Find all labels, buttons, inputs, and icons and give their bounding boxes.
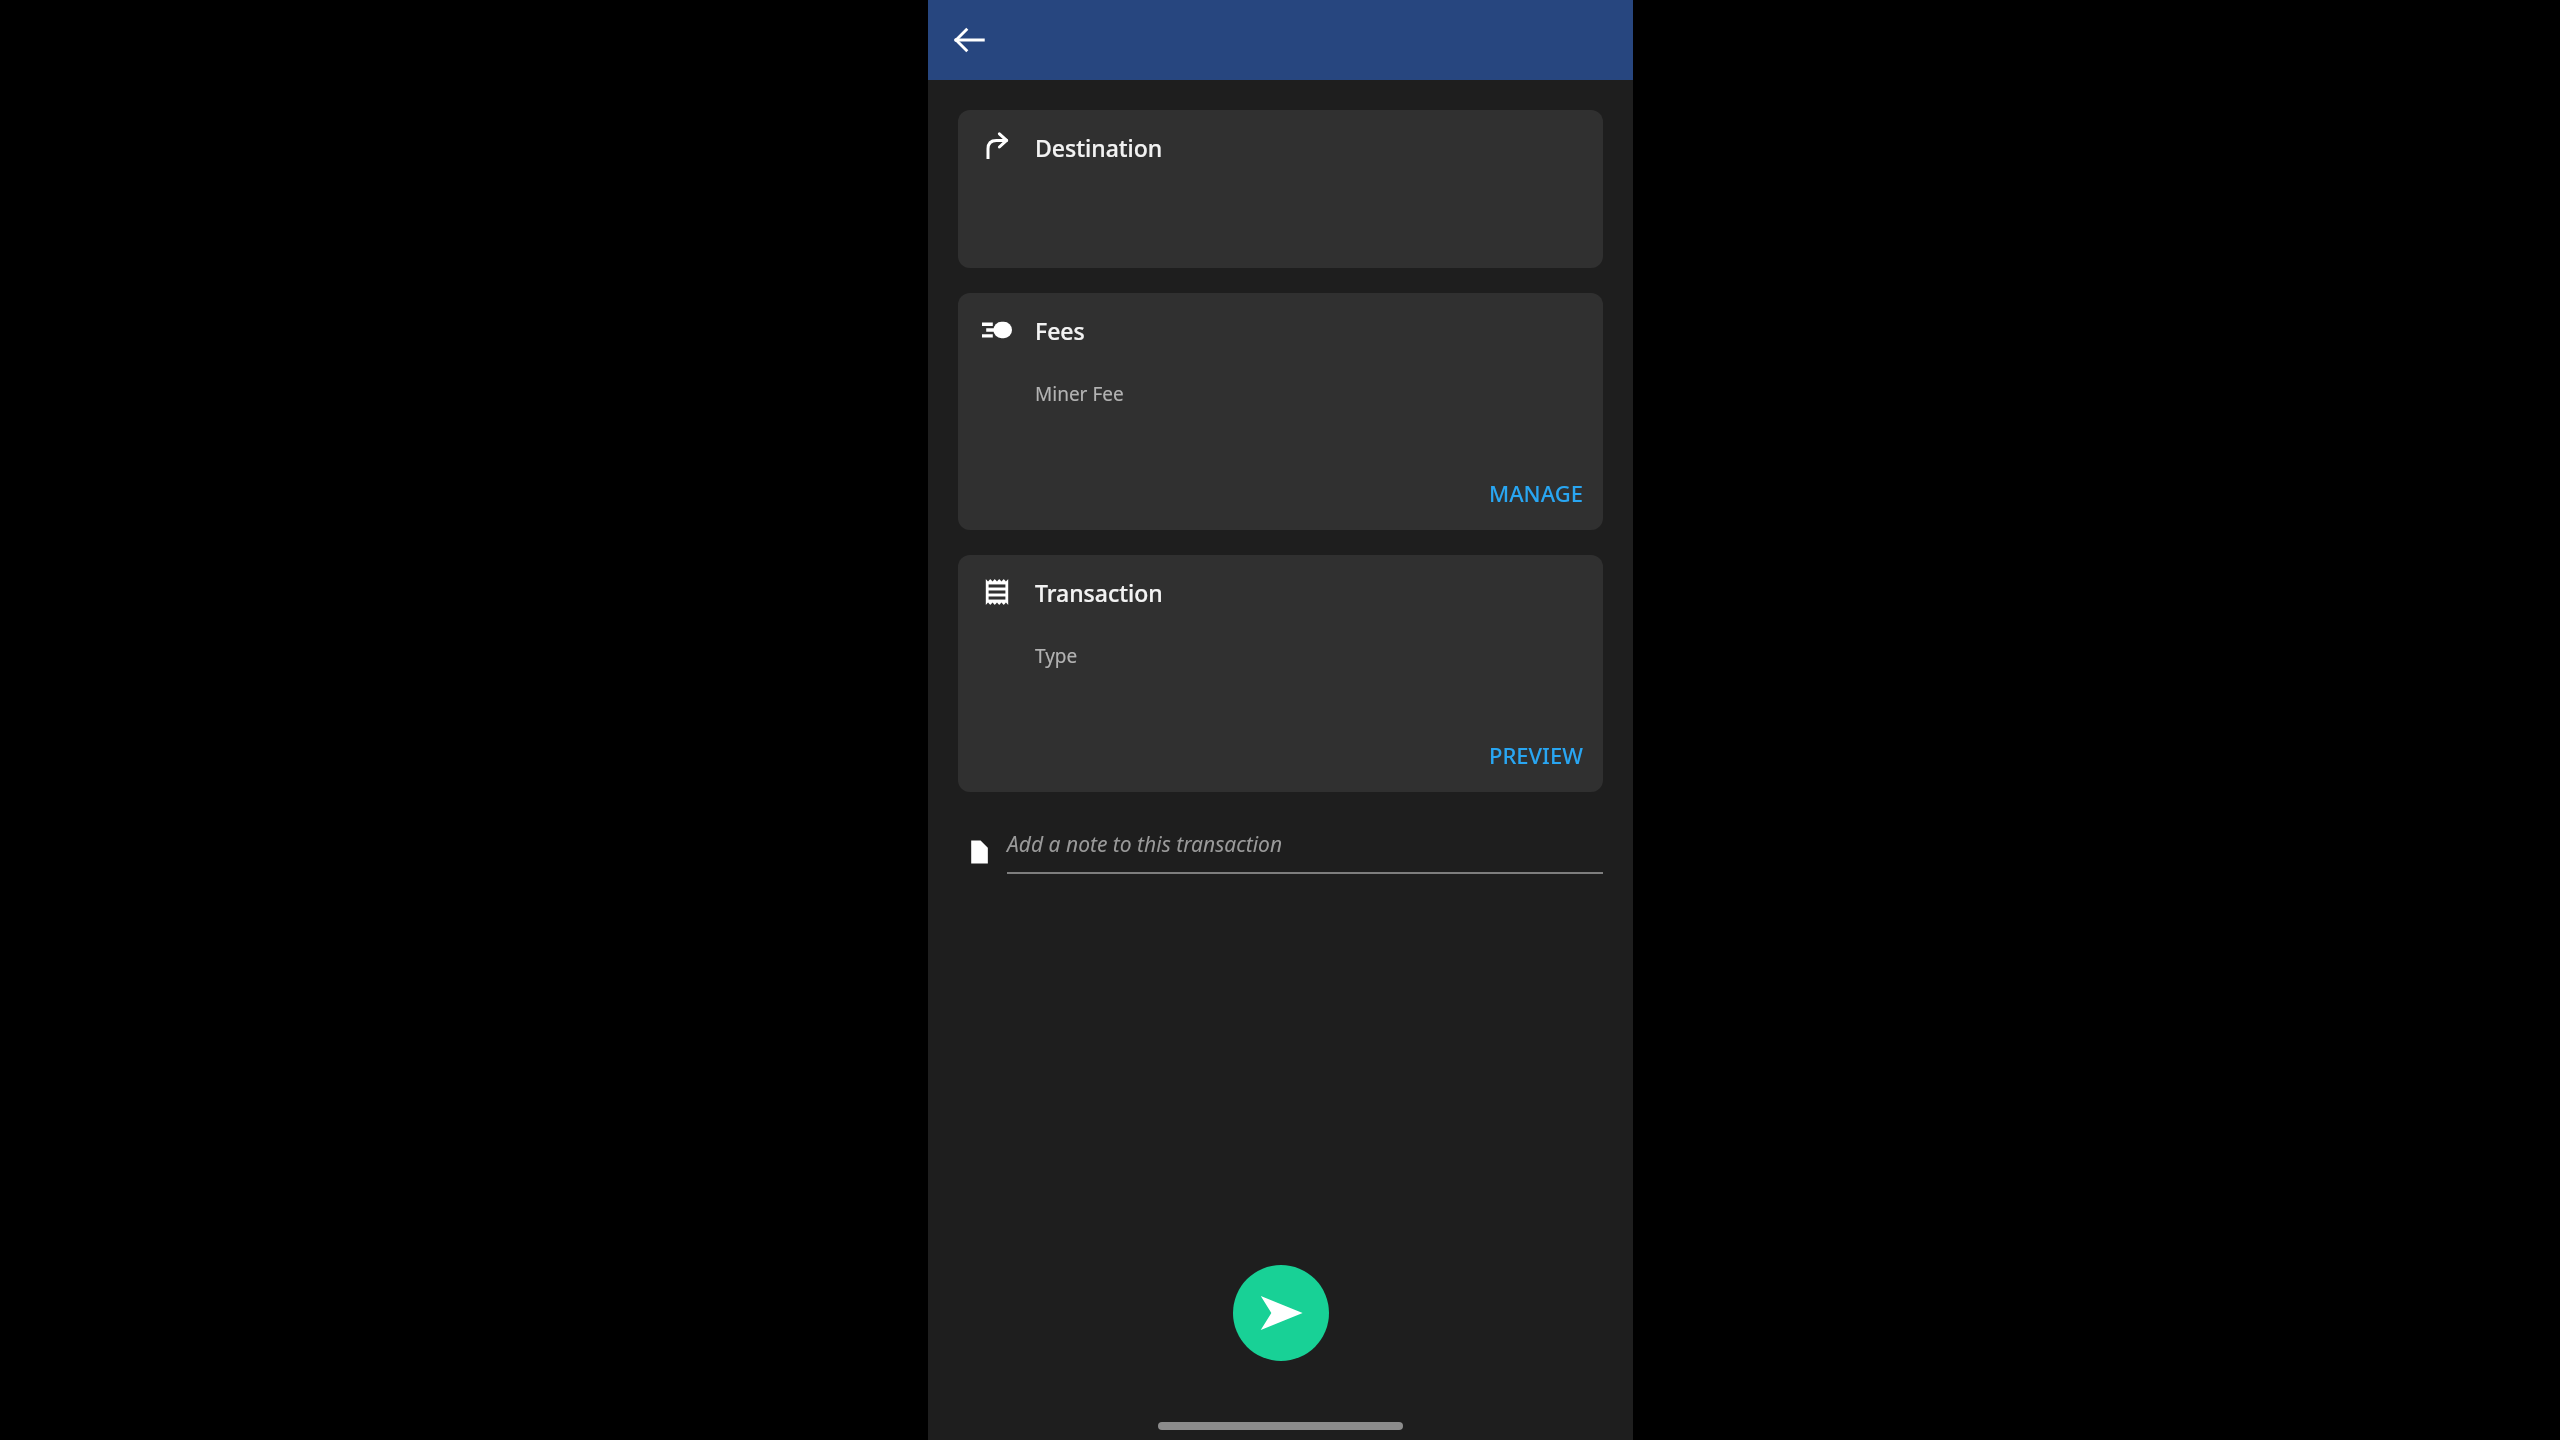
staticText: Transaction bbox=[1035, 577, 1163, 608]
staticText: Destination bbox=[1035, 132, 1163, 163]
staticText: PREVIEW bbox=[1489, 740, 1583, 770]
staticText: Fees bbox=[1035, 315, 1085, 346]
button[interactable]: Send transaction bbox=[1233, 1265, 1329, 1361]
button[interactable]: PREVIEW bbox=[1475, 730, 1597, 780]
staticText: Type bbox=[1035, 643, 1078, 669]
button[interactable]: Navigate up bbox=[940, 11, 998, 69]
button[interactable]: Fees bbox=[958, 293, 1603, 530]
button[interactable]: Add a note to this transaction bbox=[958, 814, 1603, 890]
staticText: Miner Fee bbox=[1035, 381, 1124, 407]
button[interactable]: MANAGE bbox=[1475, 468, 1597, 518]
staticText: MANAGE bbox=[1489, 478, 1583, 508]
staticText: Add a note to this transaction bbox=[1007, 830, 1283, 859]
button[interactable]: Destination bbox=[958, 110, 1603, 268]
button[interactable]: Transaction bbox=[958, 555, 1603, 792]
